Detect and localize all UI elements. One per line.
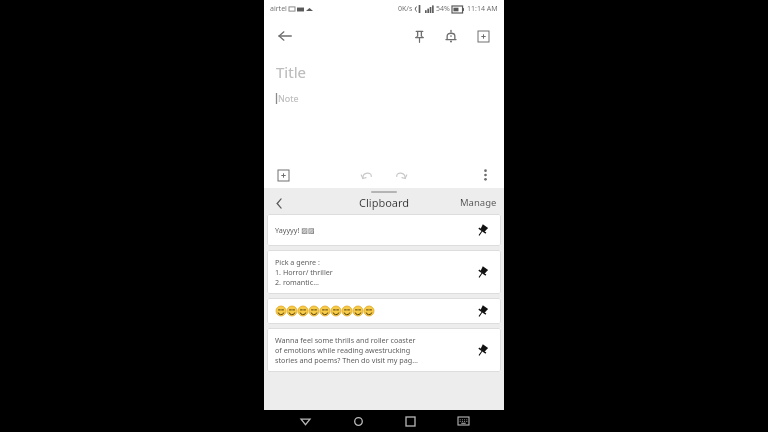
button[interactable]: Add to collection <box>470 23 496 49</box>
staticText: 2. romantic… <box>275 277 319 287</box>
button[interactable]: More options <box>475 165 495 185</box>
staticText: Title <box>276 62 306 82</box>
staticText: of emotions while reading awestrucking <box>275 345 411 355</box>
staticText: stories and poems? Then do visit my pag… <box>275 355 418 365</box>
button[interactable]: Pin note <box>406 23 432 49</box>
button[interactable]: Manage <box>457 194 500 211</box>
button[interactable]: Insert <box>273 165 293 185</box>
button[interactable]: Pin clipboard item <box>267 298 501 324</box>
staticText: airtel <box>270 4 287 14</box>
button[interactable]: Recent apps <box>399 410 421 432</box>
staticText: 54% <box>436 4 450 14</box>
staticText: Note <box>278 92 299 104</box>
button[interactable]: Back <box>294 410 316 432</box>
button[interactable]: Back <box>269 193 289 213</box>
button[interactable]: Wanna feel some thrills and roller coast… <box>267 328 501 372</box>
staticText: Clipboard <box>359 195 410 210</box>
button[interactable]: Home <box>347 410 369 432</box>
button[interactable]: Pin clipboard item <box>476 222 492 238</box>
staticText: 1. Horror/ thriller <box>275 267 333 277</box>
staticText: Yayyyy! ▨▨ <box>275 225 315 235</box>
staticText: 11:14 AM <box>467 4 498 14</box>
button[interactable]: Pin clipboard item <box>476 303 492 319</box>
button[interactable]: Undo <box>356 164 378 186</box>
staticText: 0K/s <box>398 4 413 14</box>
button[interactable]: Set reminder <box>438 23 464 49</box>
button[interactable]: Back <box>272 23 298 49</box>
button[interactable]: Yayyyy! ▨▨ <box>267 214 501 246</box>
staticText: Pick a genre : <box>275 257 320 267</box>
staticText: Manage <box>460 196 497 209</box>
button[interactable]: Pin clipboard item <box>476 264 492 280</box>
button[interactable]: Pin clipboard item <box>476 342 492 358</box>
button[interactable]: Redo <box>390 164 412 186</box>
button[interactable]: Keyboard <box>452 410 474 432</box>
staticText: Wanna feel some thrills and roller coast… <box>275 335 416 345</box>
button[interactable]: Pick a genre : <box>267 250 501 294</box>
